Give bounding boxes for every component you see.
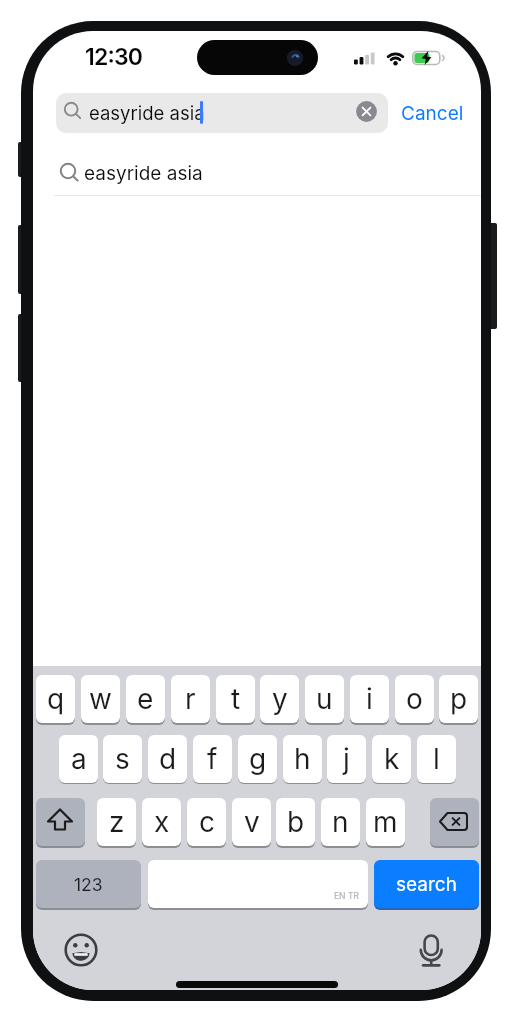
button[interactable]: g xyxy=(238,735,277,783)
button[interactable]: p xyxy=(439,675,478,723)
staticText: a xyxy=(71,742,87,776)
button[interactable]: a xyxy=(59,735,98,783)
button[interactable] xyxy=(56,93,388,133)
button[interactable] xyxy=(64,933,98,967)
button[interactable]: b xyxy=(276,798,315,846)
button[interactable] xyxy=(36,798,85,846)
button[interactable]: v xyxy=(232,798,271,846)
button[interactable]: 123 xyxy=(36,860,141,908)
staticText: j xyxy=(343,742,350,776)
staticText: m xyxy=(373,805,398,839)
button[interactable]: w xyxy=(81,675,120,723)
staticText: search xyxy=(396,873,457,896)
staticText: h xyxy=(294,742,311,776)
button[interactable]: i xyxy=(350,675,389,723)
button[interactable] xyxy=(33,151,481,195)
staticText: EN TR xyxy=(334,891,359,901)
button[interactable]: l xyxy=(417,735,456,783)
staticText: l xyxy=(433,742,440,776)
staticText: z xyxy=(109,805,125,839)
staticText: 123 xyxy=(74,874,103,895)
button[interactable]: t xyxy=(216,675,255,723)
button[interactable]: Cancel xyxy=(396,93,468,133)
staticText: c xyxy=(199,805,215,839)
button[interactable]: f xyxy=(193,735,232,783)
button[interactable]: z xyxy=(97,798,136,846)
button[interactable]: o xyxy=(395,675,434,723)
staticText: q xyxy=(47,682,65,716)
button[interactable]: search xyxy=(374,860,479,908)
staticText: i xyxy=(366,682,373,716)
button[interactable]: h xyxy=(283,735,322,783)
staticText: s xyxy=(115,742,130,776)
staticText: x xyxy=(154,805,170,839)
staticText: w xyxy=(89,682,112,716)
button[interactable]: x xyxy=(142,798,181,846)
staticText: b xyxy=(287,805,305,839)
staticText: d xyxy=(159,742,177,776)
staticText: Cancel xyxy=(401,102,464,125)
button[interactable]: d xyxy=(148,735,187,783)
staticText: g xyxy=(249,742,267,776)
button[interactable]: e xyxy=(126,675,165,723)
staticText: v xyxy=(244,805,260,839)
staticText: e xyxy=(137,682,154,716)
staticText: n xyxy=(332,805,349,839)
button[interactable] xyxy=(412,932,450,970)
button[interactable]: q xyxy=(36,675,75,723)
staticText: f xyxy=(207,742,218,776)
button[interactable]: y xyxy=(260,675,299,723)
button[interactable]: m xyxy=(366,798,405,846)
button[interactable]: j xyxy=(327,735,366,783)
button[interactable]: r xyxy=(171,675,210,723)
button[interactable]: k xyxy=(372,735,411,783)
staticText: easyride asia xyxy=(89,102,205,124)
staticText: t xyxy=(231,682,241,716)
staticText: o xyxy=(406,682,423,716)
button[interactable]: n xyxy=(321,798,360,846)
button[interactable]: u xyxy=(305,675,344,723)
staticText: p xyxy=(450,682,468,716)
staticText: easyride asia xyxy=(84,162,203,185)
staticText: r xyxy=(185,682,196,716)
button[interactable]: c xyxy=(187,798,226,846)
button[interactable]: s xyxy=(103,735,142,783)
staticText: k xyxy=(384,742,400,776)
button[interactable] xyxy=(430,798,479,846)
staticText: u xyxy=(316,682,333,716)
staticText: y xyxy=(272,682,288,716)
staticText: 12:30 xyxy=(85,43,143,71)
button[interactable] xyxy=(148,860,368,908)
